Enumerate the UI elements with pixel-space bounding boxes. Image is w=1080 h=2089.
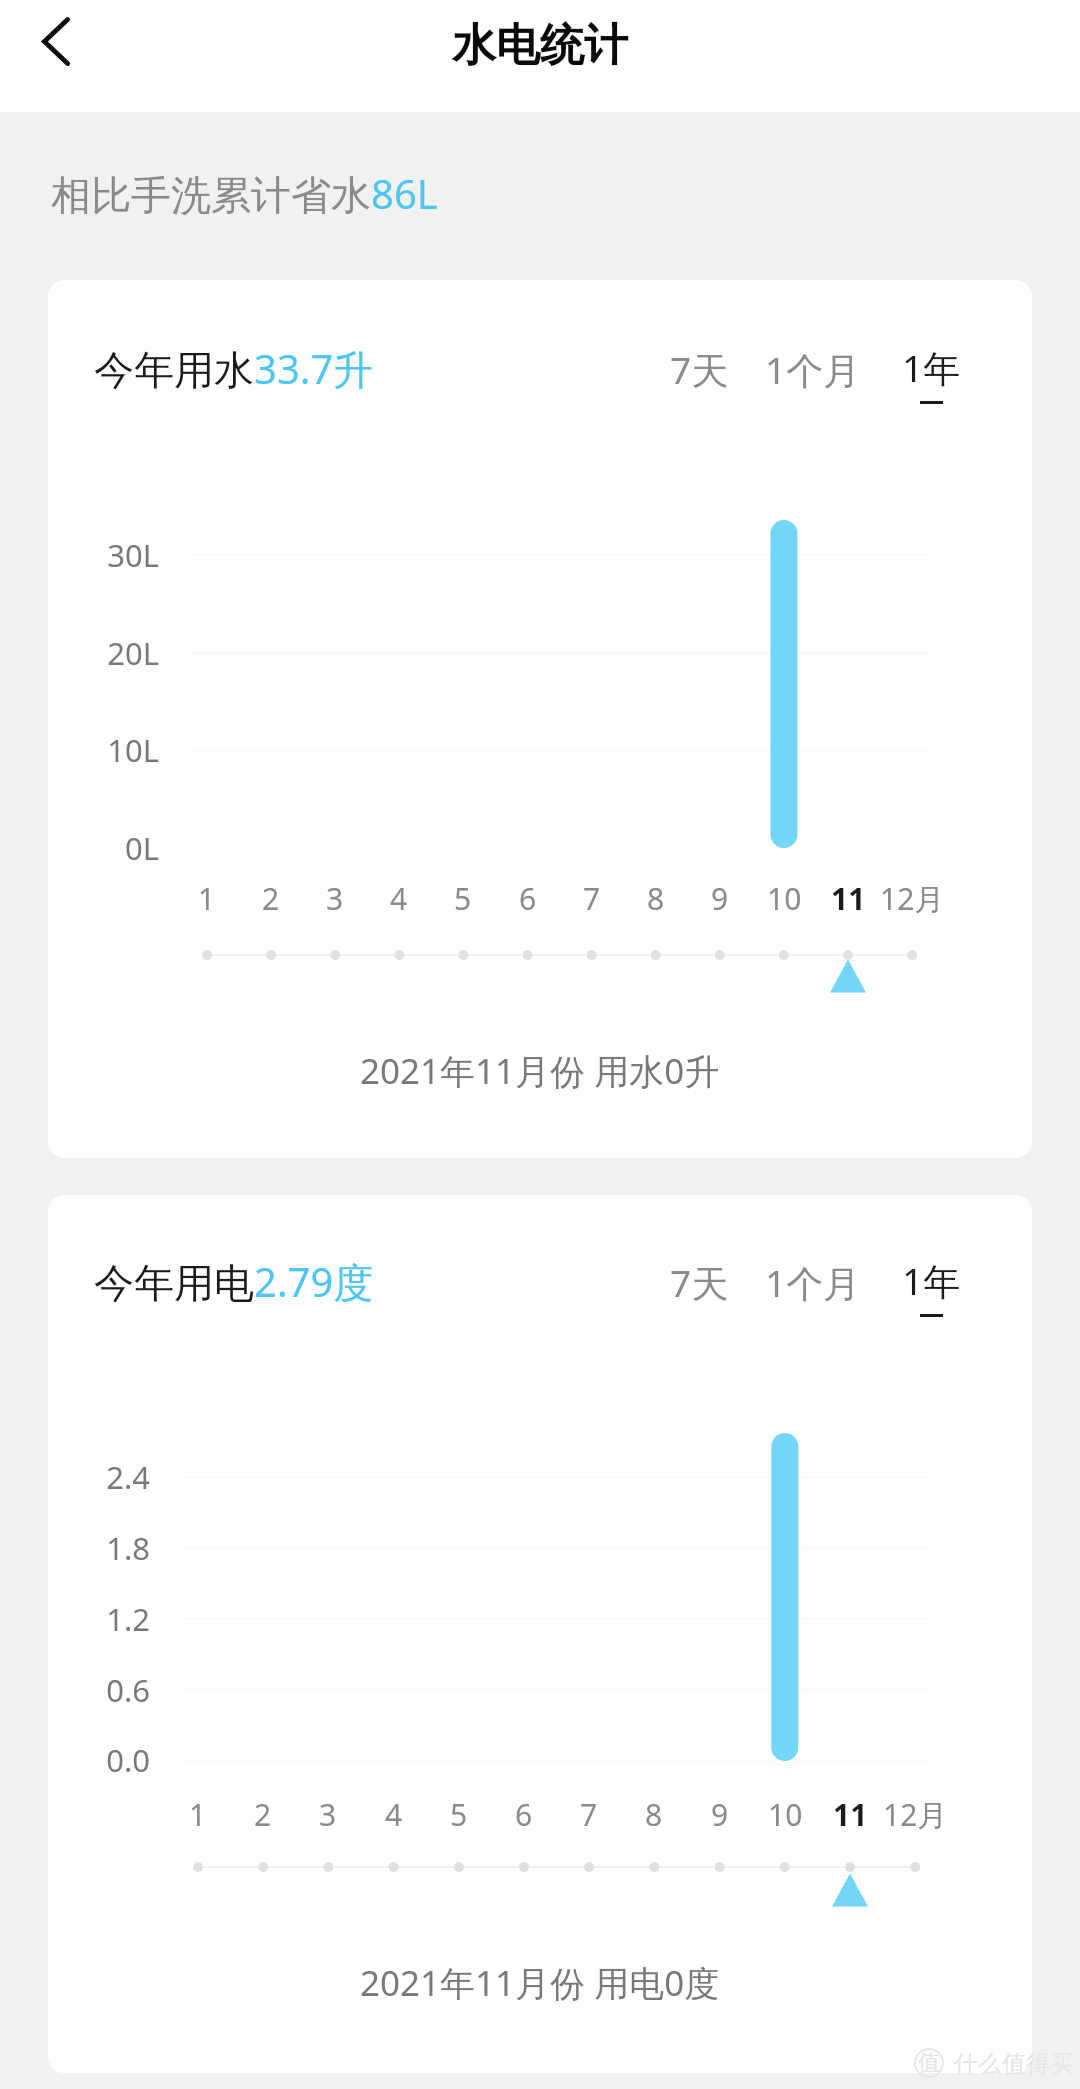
- staticText: 1.2: [106, 1598, 150, 1640]
- staticText: 1年: [902, 342, 961, 393]
- staticText: 9: [711, 1794, 729, 1835]
- staticText: 相比手洗累计省水86L: [51, 166, 438, 221]
- staticText: 8: [645, 1794, 663, 1835]
- button[interactable]: 1年: [892, 1254, 970, 1326]
- staticText: 2021年11月份 用电0度: [360, 1959, 720, 2007]
- staticText: 3: [319, 1794, 337, 1835]
- staticText: 2.4: [106, 1456, 150, 1498]
- button[interactable]: 1个月: [756, 1257, 870, 1305]
- staticText: 1个月: [765, 344, 861, 392]
- staticText: 0.6: [106, 1669, 150, 1711]
- staticText: 6: [515, 1794, 533, 1835]
- staticText: 2: [254, 1794, 272, 1835]
- staticText: 0L: [125, 827, 159, 869]
- button[interactable]: Select month: [187, 933, 932, 995]
- button[interactable]: Back: [14, 0, 96, 84]
- staticText: 水电统计: [452, 18, 628, 73]
- staticText: 1: [198, 878, 216, 919]
- staticText: 11: [833, 1794, 868, 1835]
- staticText: 0.0: [106, 1739, 150, 1781]
- staticText: 1个月: [765, 1257, 861, 1305]
- staticText: 4: [385, 1794, 403, 1835]
- staticText: 10: [767, 878, 802, 919]
- button[interactable]: 1年: [892, 341, 970, 413]
- staticText: 2: [262, 878, 280, 919]
- button[interactable]: 7天: [660, 344, 738, 392]
- staticText: 20L: [107, 632, 159, 674]
- button[interactable]: 7天: [660, 1257, 738, 1305]
- staticText: 1.8: [106, 1527, 150, 1569]
- staticText: 7: [580, 1794, 598, 1835]
- staticText: 12月: [880, 878, 945, 919]
- staticText: 9: [711, 878, 729, 919]
- staticText: 7天: [670, 344, 729, 392]
- staticText: 值: [918, 2049, 940, 2077]
- staticText: 什么值得买: [954, 2049, 1074, 2079]
- staticText: 10L: [107, 729, 159, 771]
- staticText: 1年: [902, 1255, 961, 1306]
- staticText: 3: [326, 878, 344, 919]
- staticText: 今年用水33.7升: [94, 341, 374, 396]
- staticText: 今年用电2.79度: [94, 1254, 374, 1309]
- staticText: 12月: [883, 1794, 948, 1835]
- staticText: 10: [768, 1794, 803, 1835]
- staticText: 5: [454, 878, 472, 919]
- staticText: 7天: [670, 1257, 729, 1305]
- staticText: 5: [450, 1794, 468, 1835]
- staticText: 8: [647, 878, 665, 919]
- staticText: 2021年11月份 用水0升: [360, 1047, 720, 1095]
- staticText: 4: [390, 878, 408, 919]
- button[interactable]: 1个月: [756, 344, 870, 392]
- staticText: 7: [583, 878, 601, 919]
- staticText: 11: [831, 878, 866, 919]
- staticText: 30L: [107, 534, 159, 576]
- staticText: 1: [189, 1794, 207, 1835]
- staticText: 6: [519, 878, 537, 919]
- button[interactable]: Select month: [178, 1845, 935, 1907]
